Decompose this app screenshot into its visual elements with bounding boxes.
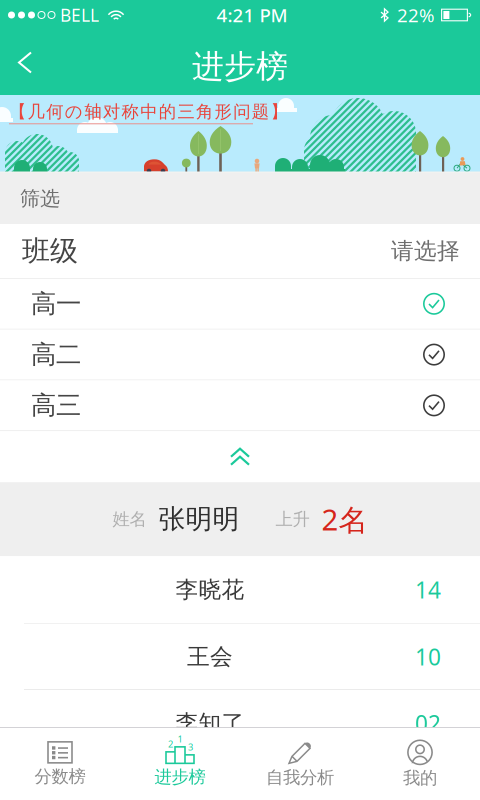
staticText: 进步榜 [154,766,205,788]
staticText: 上升 [275,509,309,530]
button[interactable]: 返回 [0,30,54,94]
staticText: 王会 [187,643,233,671]
staticText: 22% [397,3,435,27]
staticText: 自我分析 [266,767,334,788]
staticText: 进步榜 [192,47,288,86]
staticText: 姓名 [112,509,146,530]
staticText: 02 [415,708,441,738]
staticText: 1 [177,733,182,745]
staticText: 高二 [31,339,81,370]
staticText: 高一 [31,288,81,319]
button[interactable]: 高一 [0,279,480,329]
button[interactable]: 李晓花 [0,557,480,623]
staticText: 张明明 [158,503,239,536]
button[interactable]: 自我分析 [240,728,360,800]
staticText: BELL [60,3,99,26]
button[interactable]: 李知了 [0,690,480,756]
staticText: 10 [415,642,441,672]
staticText: 2 [168,738,173,750]
staticText: 2名 [321,500,367,539]
staticText: 4:21 PM [216,3,287,27]
button[interactable]: 2 [120,728,240,800]
staticText: 14 [415,575,441,605]
staticText: 班级 [22,234,78,268]
button[interactable]: 收起 [0,431,480,482]
staticText: 【几何の轴对称中的三角形问题】 [9,101,287,122]
button[interactable]: 分数榜 [0,728,120,800]
button[interactable]: 王会 [0,624,480,690]
staticText: 李知了 [175,709,244,737]
button[interactable]: 高三 [0,380,480,430]
staticText: 我的 [403,767,437,789]
staticText: 高三 [31,390,81,421]
staticText: 筛选 [20,186,60,211]
staticText: 分数榜 [34,766,85,787]
button[interactable]: 班级 [0,224,480,278]
staticText: 请选择 [391,237,460,265]
staticText: 李晓花 [175,576,244,604]
button[interactable]: 高二 [0,330,480,380]
staticText: 3 [188,741,193,753]
button[interactable]: 我的 [360,728,480,800]
